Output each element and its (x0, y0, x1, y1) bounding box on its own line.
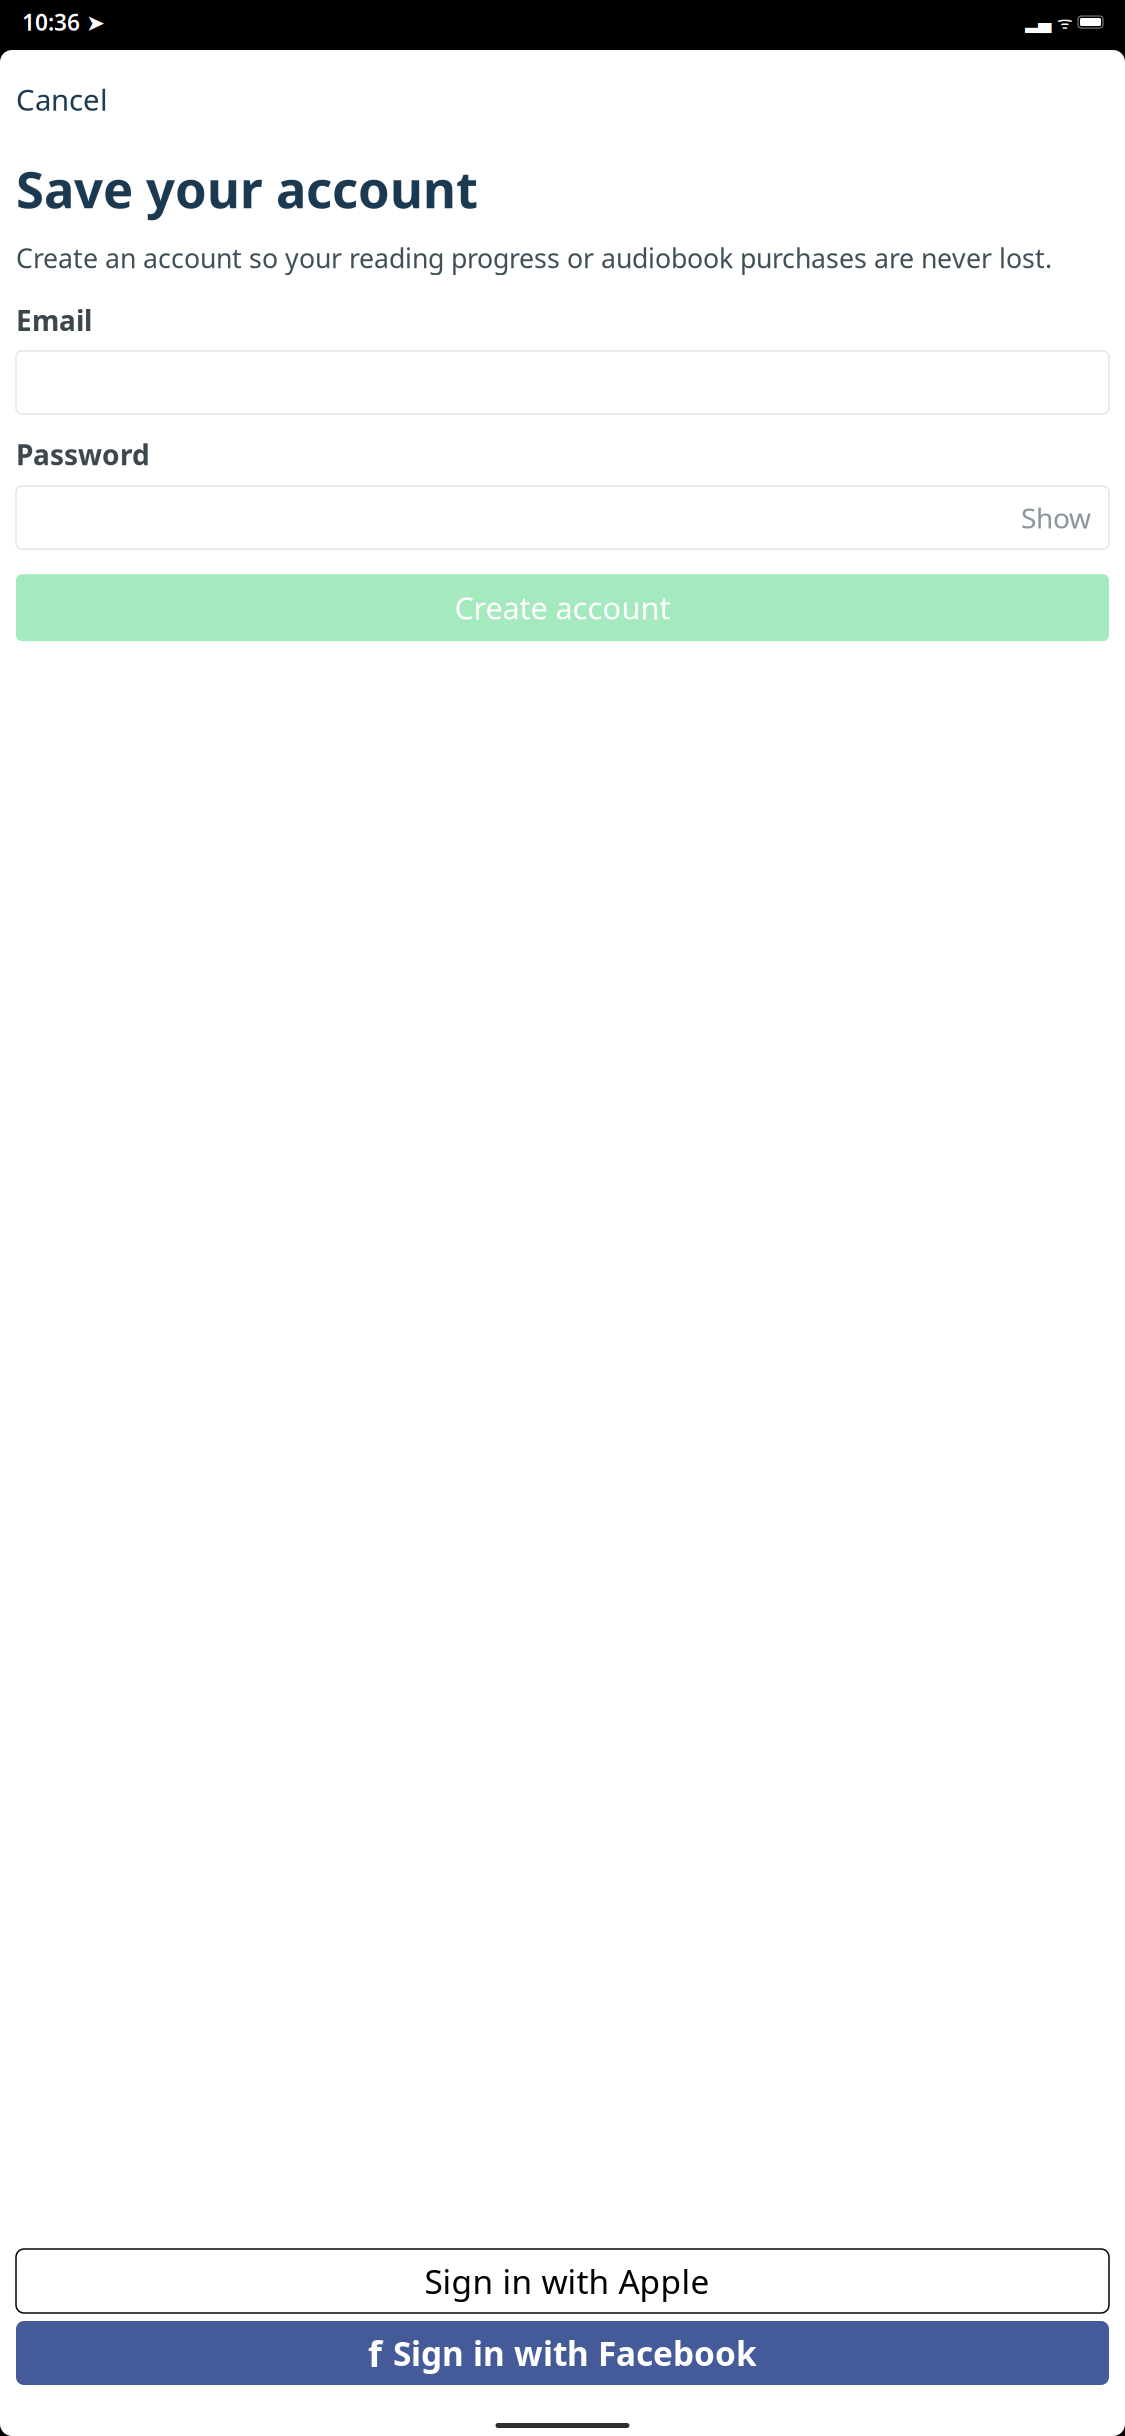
staticText: Create an account so your reading progre… (16, 240, 1052, 276)
staticText: ▂▄ ᯤ (1025, 10, 1073, 33)
staticText: Sign in with Facebook (393, 2331, 757, 2375)
staticText: Password (16, 436, 150, 473)
button[interactable]: Show (1003, 485, 1109, 550)
staticText: Cancel (16, 80, 108, 119)
button[interactable] (16, 2249, 1109, 2313)
staticText: Email (16, 302, 92, 339)
staticText: Save your account (16, 155, 478, 222)
staticText: 10:36 ➤ (22, 7, 105, 37)
staticText: Create account (454, 587, 670, 628)
button[interactable]: Cancel (0, 72, 124, 127)
staticText: f (368, 2329, 382, 2377)
button[interactable]: f (16, 2321, 1109, 2385)
button[interactable]: Create account (16, 574, 1109, 641)
staticText: Sign in with Apple (424, 2259, 709, 2303)
staticText: Show (1021, 499, 1091, 536)
